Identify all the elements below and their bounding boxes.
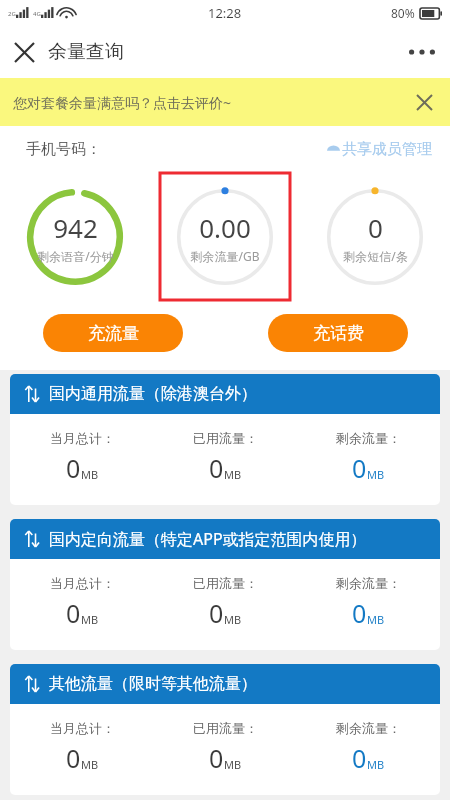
staticText: 0	[352, 596, 367, 630]
staticText: MB	[367, 467, 385, 482]
staticText: 80%	[391, 5, 415, 21]
staticText: 0	[66, 596, 81, 630]
staticText: 已用流量：	[193, 430, 258, 446]
staticText: 剩余流量：	[336, 430, 401, 446]
staticText: 国内定向流量（特定APP或指定范围内使用）	[49, 528, 367, 550]
staticText: MB	[81, 757, 99, 772]
staticText: 国内通用流量（除港澳台外）	[49, 384, 257, 404]
staticText: 剩余短信/条	[343, 248, 408, 264]
staticText: 当月总计：	[50, 430, 115, 446]
staticText: 0	[209, 596, 224, 630]
button[interactable]: 充流量	[43, 314, 183, 352]
staticText: 当月总计：	[50, 575, 115, 591]
staticText: 4G	[33, 10, 41, 18]
staticText: MB	[81, 467, 99, 482]
button[interactable]: Close	[0, 28, 48, 76]
staticText: MB	[367, 757, 385, 772]
staticText: 0	[352, 451, 367, 485]
staticText: 2G	[8, 10, 16, 18]
button[interactable]: 0.00	[160, 173, 290, 300]
staticText: 您对套餐余量满意吗？点击去评价~	[13, 93, 232, 112]
button[interactable]: 国内通用流量（除港澳台外）	[10, 374, 440, 505]
staticText: 当月总计：	[50, 720, 115, 736]
staticText: 0	[368, 210, 383, 245]
staticText: 剩余流量：	[336, 720, 401, 736]
button[interactable]: 您对套餐余量满意吗？点击去评价~	[0, 78, 450, 126]
staticText: 942	[53, 210, 98, 245]
staticText: 共享成员管理	[342, 140, 432, 159]
button[interactable]: 充话费	[268, 314, 408, 352]
button[interactable]: 942	[25, 187, 125, 287]
staticText: 0	[209, 451, 224, 485]
staticText: 充流量	[88, 323, 139, 344]
button[interactable]: 共享成员管理	[327, 140, 432, 159]
staticText: MB	[367, 612, 385, 627]
staticText: MB	[224, 757, 242, 772]
staticText: 剩余语音/分钟	[37, 248, 114, 264]
staticText: 余量查询	[48, 40, 124, 64]
staticText: MB	[224, 612, 242, 627]
staticText: 0	[66, 451, 81, 485]
button[interactable]: More options	[394, 25, 450, 78]
staticText: 已用流量：	[193, 720, 258, 736]
staticText: MB	[81, 612, 99, 627]
staticText: 手机号码：	[26, 140, 101, 159]
staticText: 0	[352, 741, 367, 775]
button[interactable]: 其他流量（限时等其他流量）	[10, 664, 440, 795]
staticText: 剩余流量：	[336, 575, 401, 591]
staticText: 0.00	[199, 210, 251, 245]
button[interactable]: 国内定向流量（特定APP或指定范围内使用）	[10, 519, 440, 650]
staticText: 充话费	[313, 323, 364, 344]
staticText: 0	[66, 741, 81, 775]
button[interactable]: 0	[325, 187, 425, 287]
button[interactable]: Dismiss banner	[408, 86, 440, 118]
staticText: 12:28	[208, 4, 242, 22]
staticText: 剩余流量/GB	[190, 248, 260, 264]
staticText: 0	[209, 741, 224, 775]
staticText: MB	[224, 467, 242, 482]
staticText: 其他流量（限时等其他流量）	[49, 674, 257, 694]
staticText: 已用流量：	[193, 575, 258, 591]
button[interactable]: 0.00	[175, 187, 275, 287]
